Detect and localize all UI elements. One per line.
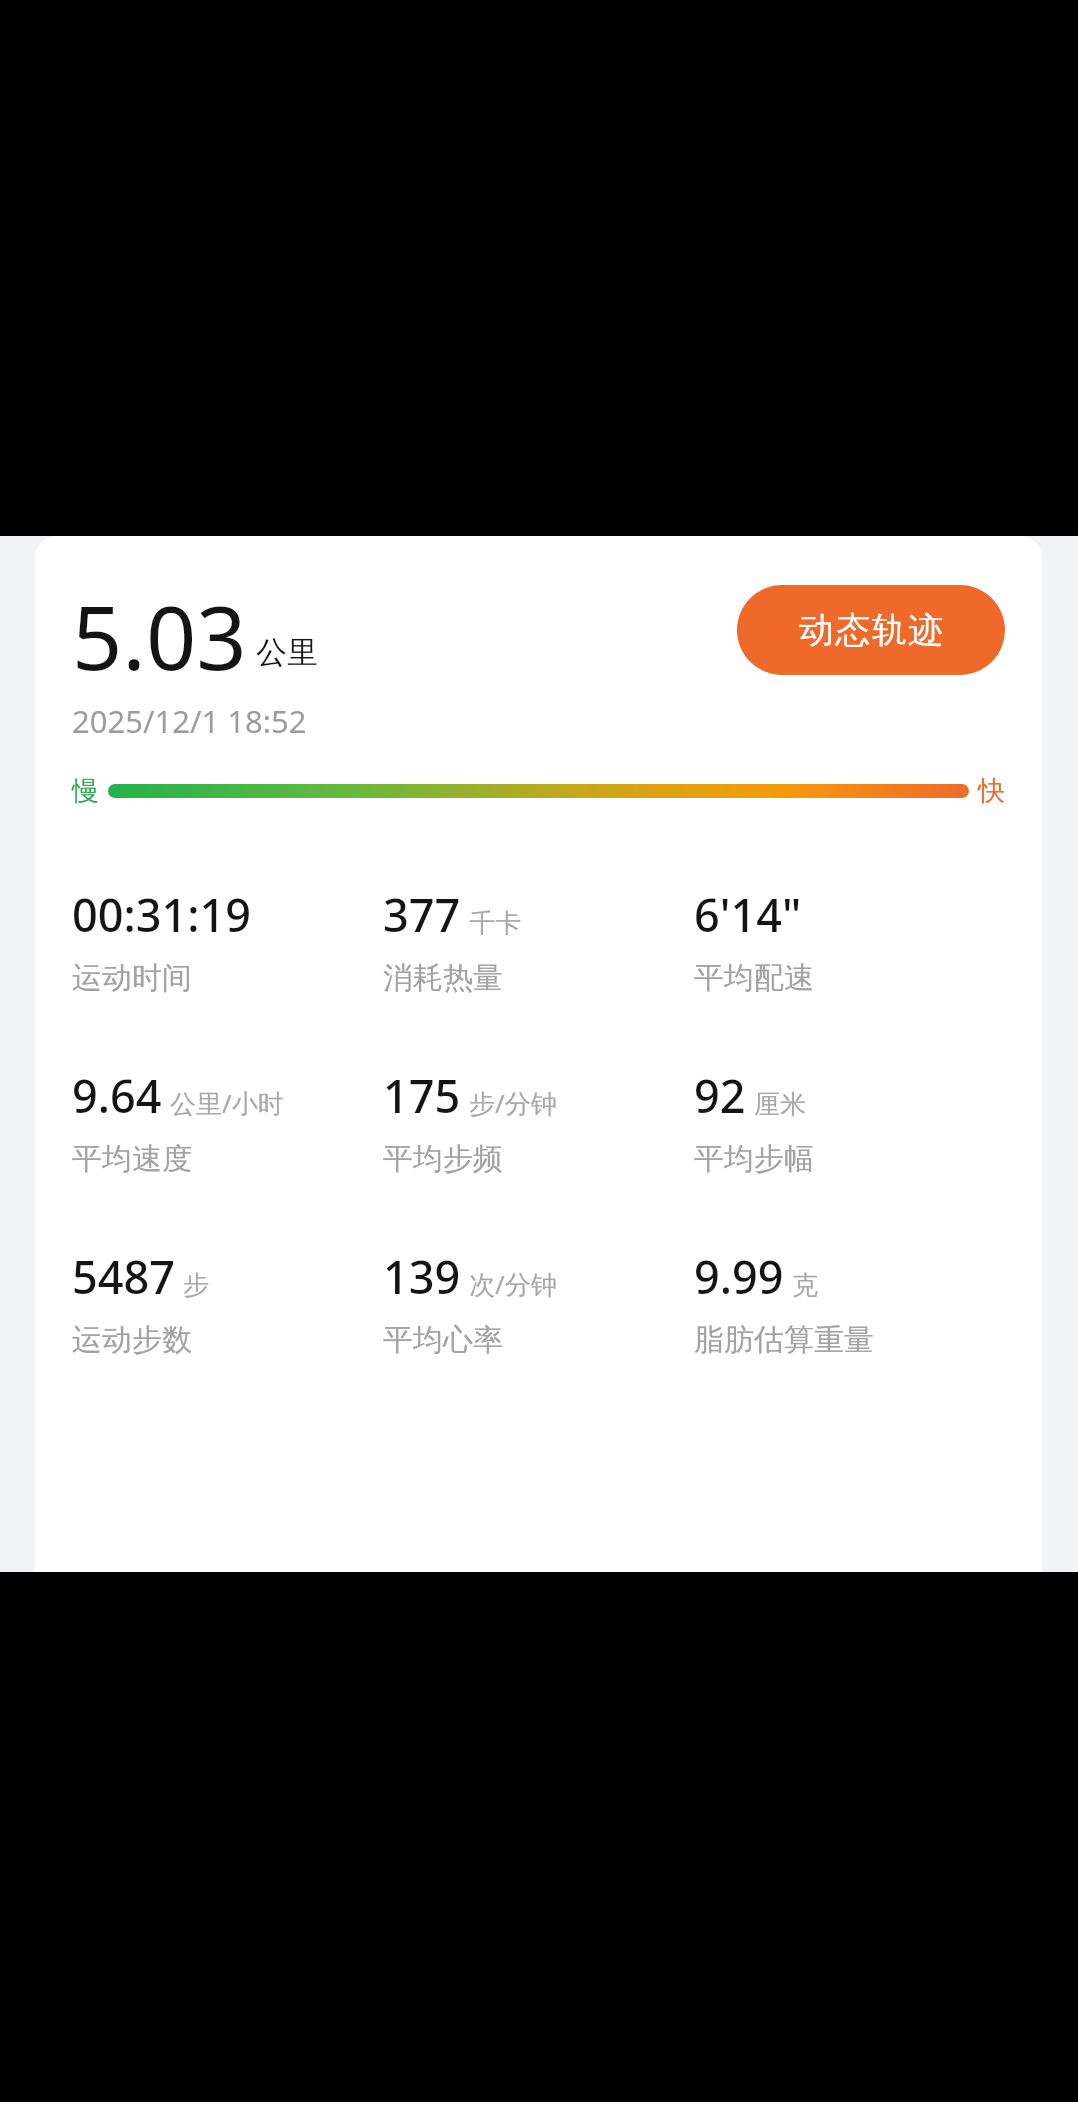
staticText: 5487 [72, 1246, 175, 1307]
staticText: 运动步数 [72, 1321, 192, 1359]
staticText: 千卡 [469, 907, 521, 940]
staticText: 6'14" [694, 884, 802, 945]
staticText: 平均步幅 [694, 1140, 814, 1178]
staticText: 脂肪估算重量 [694, 1321, 874, 1359]
staticText: 9.64 [72, 1065, 162, 1126]
button[interactable]: 175 [383, 1065, 694, 1178]
button[interactable]: 9.64 [72, 1065, 383, 1178]
staticText: 5.03 [72, 576, 247, 684]
staticText: 动态轨迹 [798, 608, 944, 652]
staticText: 平均步频 [383, 1140, 503, 1178]
staticText: 消耗热量 [383, 959, 503, 997]
staticText: 公里 [256, 633, 318, 672]
staticText: 克 [792, 1269, 818, 1302]
staticText: 139 [383, 1246, 461, 1307]
staticText: 92 [694, 1065, 746, 1126]
staticText: 次/分钟 [469, 1266, 557, 1302]
staticText: 175 [383, 1065, 461, 1126]
staticText: 厘米 [754, 1088, 806, 1121]
staticText: 公里/小时 [170, 1085, 284, 1121]
staticText: 平均配速 [694, 959, 814, 997]
button[interactable]: 6'14" [694, 884, 1005, 997]
button[interactable]: 92 [694, 1065, 1005, 1178]
staticText: 快 [978, 774, 1005, 808]
staticText: 00:31:19 [72, 884, 251, 945]
staticText: 2025/12/1 18:52 [72, 700, 307, 742]
button[interactable]: 9.99 [694, 1246, 1005, 1359]
button[interactable]: 00:31:19 [72, 884, 383, 997]
staticText: 9.99 [694, 1246, 784, 1307]
button[interactable]: 139 [383, 1246, 694, 1359]
staticText: 运动时间 [72, 959, 192, 997]
button[interactable]: 动态轨迹 [737, 585, 1005, 675]
staticText: 平均心率 [383, 1321, 503, 1359]
button[interactable]: 377 [383, 884, 694, 997]
staticText: 慢 [72, 774, 99, 808]
button[interactable]: 5487 [72, 1246, 383, 1359]
staticText: 步 [183, 1269, 209, 1302]
staticText: 平均速度 [72, 1140, 192, 1178]
staticText: 步/分钟 [469, 1085, 557, 1121]
staticText: 377 [383, 884, 461, 945]
